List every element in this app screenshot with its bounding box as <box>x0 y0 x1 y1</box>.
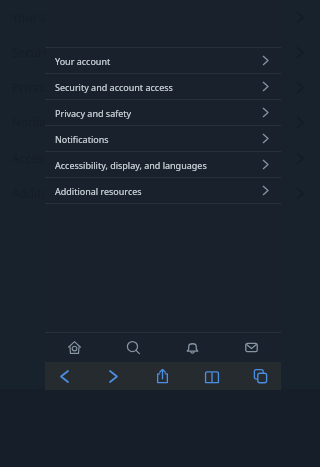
button[interactable]: Additional resources <box>45 178 281 203</box>
button[interactable]: Privacy and safety <box>45 100 281 125</box>
button[interactable]: Tabs <box>236 362 285 390</box>
staticText: Your account <box>55 55 111 67</box>
staticText: Privacy and safety <box>12 79 112 95</box>
staticText: Security and account access <box>55 81 173 93</box>
staticText: Security and account access <box>12 44 167 60</box>
button[interactable]: Bookmarks <box>187 362 236 390</box>
staticText: Notifications <box>12 114 83 130</box>
staticText: Notifications <box>55 133 109 145</box>
staticText: Additional resources <box>55 185 142 197</box>
button[interactable]: Accessibility, display, and languages <box>45 152 281 177</box>
button[interactable]: Notifications <box>0 109 320 135</box>
button[interactable]: Accessibility, display, and languages <box>0 145 320 171</box>
button[interactable]: Security and account access <box>0 39 320 65</box>
button[interactable]: Privacy and safety <box>0 74 320 100</box>
button[interactable]: Search <box>104 333 163 362</box>
button[interactable]: Notifications <box>45 126 281 151</box>
staticText: Accessibility, display, and languages <box>55 159 207 171</box>
button[interactable]: Back <box>39 362 89 390</box>
staticText: Accessibility, display, and languages <box>12 150 211 166</box>
staticText: Privacy and safety <box>55 107 132 119</box>
button[interactable]: Your account <box>45 48 281 73</box>
button[interactable]: Additional resources <box>0 180 320 206</box>
button[interactable]: Notifications <box>163 333 222 362</box>
button[interactable]: Security and account access <box>45 74 281 99</box>
button[interactable]: Forward <box>89 362 138 390</box>
button[interactable]: Share <box>138 362 187 390</box>
staticText: Additional resources <box>12 185 126 201</box>
button[interactable]: Messages <box>222 333 281 362</box>
button[interactable]: Home <box>45 333 104 362</box>
